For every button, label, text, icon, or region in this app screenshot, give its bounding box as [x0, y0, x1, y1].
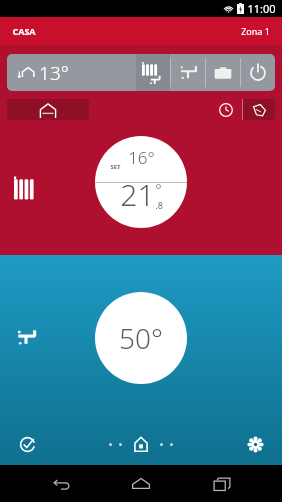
button[interactable]: Auto [7, 99, 89, 120]
button[interactable]: 13° [17, 54, 136, 91]
button[interactable]: 16° [95, 136, 187, 228]
button[interactable]: Mode [241, 54, 275, 91]
button[interactable]: Home [130, 433, 152, 455]
staticText: CASA [12, 25, 36, 37]
button[interactable]: Mode [171, 54, 205, 91]
button[interactable]: Status [14, 431, 40, 457]
button[interactable]: Zona 1 [241, 25, 270, 37]
staticText: 21 [120, 174, 155, 215]
button[interactable]: Manual [243, 99, 275, 120]
button[interactable]: Schedule [210, 99, 242, 120]
button[interactable]: Recents [202, 465, 242, 502]
staticText: 11:00 [247, 1, 276, 16]
staticText: 13° [39, 60, 69, 86]
button[interactable]: 50° [95, 292, 187, 384]
button[interactable]: Back [41, 465, 81, 502]
button[interactable]: Mode [136, 54, 170, 91]
staticText: ° [155, 179, 162, 199]
button[interactable]: Mode [206, 54, 240, 91]
button[interactable]: Settings [242, 431, 268, 457]
staticText: 16° [128, 146, 155, 169]
button[interactable]: Home [121, 465, 161, 502]
staticText: .8 [155, 199, 163, 211]
staticText: SET [110, 163, 121, 171]
staticText: Zona 1 [241, 25, 270, 37]
staticText: 50° [119, 319, 163, 357]
